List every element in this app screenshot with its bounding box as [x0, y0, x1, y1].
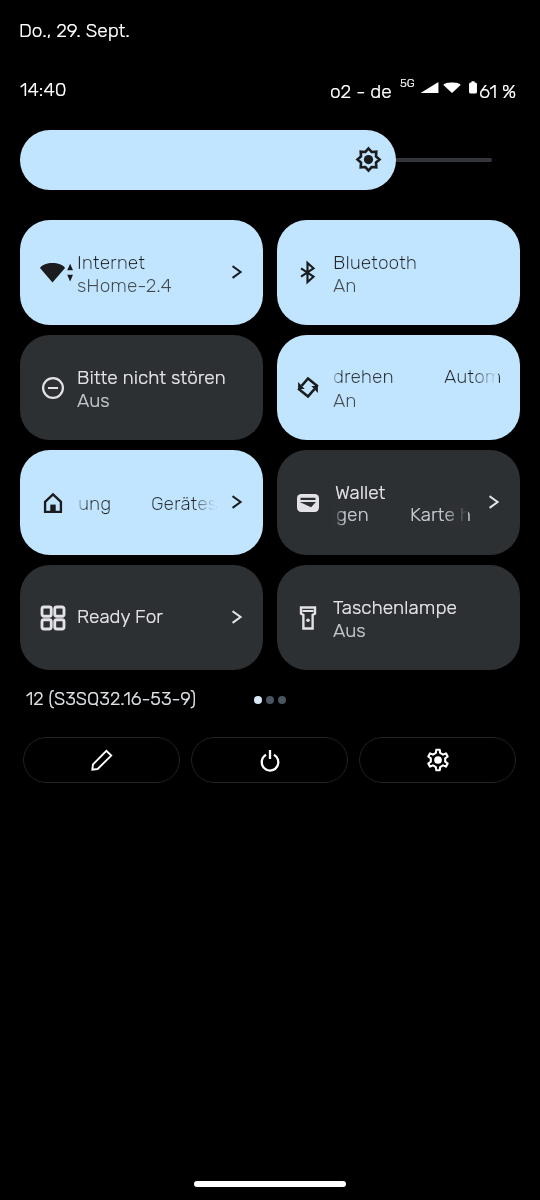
button[interactable]: drehen — [277, 335, 520, 440]
button[interactable]: Internet — [20, 220, 263, 325]
staticText: An — [333, 274, 357, 297]
staticText: 5G — [400, 76, 415, 90]
button[interactable]: Taschenlampe — [277, 565, 520, 670]
button[interactable]: Settings — [359, 737, 516, 783]
button[interactable]: Bitte nicht stören — [20, 335, 263, 440]
button[interactable]: Brightness — [20, 130, 396, 190]
button[interactable]: Wallet — [277, 450, 520, 555]
staticText: Taschenlampe — [333, 596, 457, 619]
button[interactable]: Ready For — [20, 565, 263, 670]
staticText: Ready For — [77, 605, 163, 628]
staticText: Gerätes — [151, 492, 218, 515]
staticText: Do., 29. Sept. — [19, 19, 130, 42]
staticText: gen — [336, 503, 369, 526]
staticText: 14:40 — [20, 78, 67, 101]
staticText: An — [333, 389, 357, 412]
staticText: 12 (S3SQ32.16-53-9) — [26, 688, 197, 710]
button[interactable]: Bluetooth — [277, 220, 520, 325]
staticText: Bitte nicht stören — [77, 366, 226, 389]
staticText: Bluetooth — [333, 251, 418, 274]
staticText: Internet — [77, 251, 145, 274]
staticText: sHome-2.4 — [77, 274, 172, 297]
staticText: o2 - de — [330, 80, 392, 103]
button[interactable]: Edit — [23, 737, 180, 783]
staticText: Wallet — [335, 481, 386, 504]
button[interactable]: Power — [191, 737, 348, 783]
staticText: drehen — [333, 365, 394, 388]
staticText: Aus — [333, 619, 366, 642]
staticText: Aus — [77, 389, 110, 412]
staticText: 61 % — [479, 80, 517, 103]
staticText: ung — [78, 492, 112, 515]
button[interactable]: ung — [20, 450, 263, 555]
staticText: Autom — [444, 365, 502, 388]
staticText: Karte h — [410, 503, 471, 526]
